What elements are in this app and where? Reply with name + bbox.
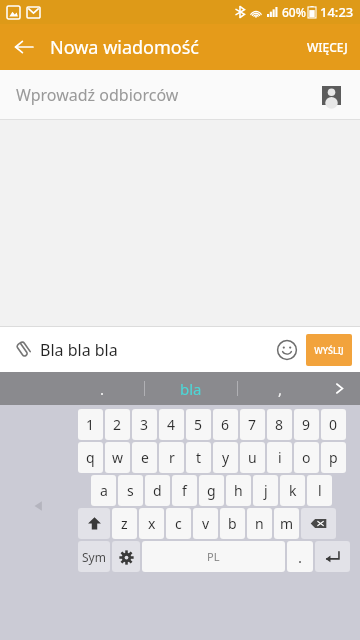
- staticText: l: [318, 481, 322, 500]
- button[interactable]: z: [112, 508, 137, 539]
- button[interactable]: q: [78, 442, 103, 473]
- button[interactable]: More suggestions: [322, 372, 356, 405]
- button[interactable]: d: [145, 475, 170, 506]
- staticText: Bla bla bla: [40, 339, 118, 361]
- staticText: h: [234, 481, 243, 500]
- button[interactable]: c: [166, 508, 191, 539]
- button[interactable]: Backspace: [301, 508, 336, 539]
- button[interactable]: 9: [294, 409, 319, 440]
- staticText: 2: [113, 415, 122, 434]
- button[interactable]: Sym: [78, 541, 110, 572]
- button[interactable]: 4: [159, 409, 184, 440]
- button[interactable]: u: [240, 442, 265, 473]
- button[interactable]: v: [193, 508, 218, 539]
- staticText: bla: [180, 379, 202, 399]
- staticText: u: [248, 448, 257, 467]
- button[interactable]: 2: [105, 409, 130, 440]
- button[interactable]: 5: [186, 409, 211, 440]
- button[interactable]: 7: [240, 409, 265, 440]
- button[interactable]: WIĘCEJ: [295, 24, 360, 70]
- staticText: p: [329, 448, 338, 467]
- staticText: 14:23: [320, 3, 354, 21]
- button[interactable]: PL: [142, 541, 285, 572]
- staticText: 5: [194, 415, 203, 434]
- button[interactable]: i: [267, 442, 292, 473]
- staticText: 1: [86, 415, 95, 434]
- button[interactable]: ,: [238, 372, 322, 405]
- button[interactable]: y: [213, 442, 238, 473]
- staticText: d: [153, 481, 162, 500]
- button[interactable]: f: [172, 475, 197, 506]
- staticText: Wprowadź odbiorców: [16, 84, 179, 106]
- button[interactable]: e: [132, 442, 157, 473]
- staticText: f: [182, 481, 187, 500]
- button[interactable]: Move keyboard: [26, 493, 52, 519]
- staticText: 60%: [282, 4, 306, 20]
- button[interactable]: k: [280, 475, 305, 506]
- staticText: z: [121, 514, 128, 533]
- button[interactable]: w: [105, 442, 130, 473]
- button[interactable]: r: [159, 442, 184, 473]
- button[interactable]: m: [274, 508, 299, 539]
- staticText: 9: [302, 415, 311, 434]
- button[interactable]: 1: [78, 409, 103, 440]
- button[interactable]: WYŚLIJ: [306, 334, 352, 366]
- staticText: g: [207, 481, 216, 500]
- button[interactable]: j: [253, 475, 278, 506]
- button[interactable]: b: [220, 508, 245, 539]
- staticText: v: [202, 514, 210, 533]
- button[interactable]: p: [321, 442, 346, 473]
- button[interactable]: Add recipient from contacts: [316, 80, 346, 110]
- staticText: q: [86, 448, 95, 467]
- staticText: 8: [275, 415, 284, 434]
- staticText: m: [280, 514, 294, 533]
- button[interactable]: t: [186, 442, 211, 473]
- staticText: .: [298, 547, 303, 567]
- button[interactable]: h: [226, 475, 251, 506]
- button[interactable]: a: [91, 475, 116, 506]
- button[interactable]: n: [247, 508, 272, 539]
- button[interactable]: .: [60, 372, 144, 405]
- staticText: 4: [167, 415, 176, 434]
- button[interactable]: 0: [321, 409, 346, 440]
- staticText: w: [112, 448, 124, 467]
- staticText: t: [196, 448, 202, 467]
- staticText: .: [100, 379, 105, 399]
- staticText: s: [127, 481, 134, 500]
- staticText: r: [169, 448, 175, 467]
- button[interactable]: l: [307, 475, 332, 506]
- button[interactable]: .: [287, 541, 313, 572]
- staticText: k: [289, 481, 297, 500]
- staticText: PL: [207, 549, 220, 564]
- button[interactable]: 6: [213, 409, 238, 440]
- staticText: e: [141, 448, 149, 467]
- staticText: Nowa wiadomość: [50, 35, 199, 60]
- staticText: 3: [140, 415, 149, 434]
- button[interactable]: Back: [6, 29, 42, 65]
- button[interactable]: 3: [132, 409, 157, 440]
- button[interactable]: Enter: [315, 541, 350, 572]
- button[interactable]: s: [118, 475, 143, 506]
- staticText: 0: [329, 415, 338, 434]
- button[interactable]: Shift: [78, 508, 110, 539]
- button[interactable]: 8: [267, 409, 292, 440]
- button[interactable]: x: [139, 508, 164, 539]
- button[interactable]: bla: [145, 372, 237, 405]
- staticText: i: [278, 448, 282, 467]
- staticText: WYŚLIJ: [314, 344, 344, 356]
- button[interactable]: g: [199, 475, 224, 506]
- staticText: o: [302, 448, 311, 467]
- button[interactable]: Keyboard settings: [112, 541, 140, 572]
- button[interactable]: Emoji: [271, 334, 303, 366]
- staticText: c: [175, 514, 182, 533]
- staticText: a: [100, 481, 108, 500]
- staticText: y: [222, 448, 230, 467]
- staticText: 7: [248, 415, 257, 434]
- staticText: b: [228, 514, 237, 533]
- button[interactable]: o: [294, 442, 319, 473]
- staticText: ,: [278, 379, 283, 399]
- staticText: WIĘCEJ: [307, 39, 348, 55]
- staticText: n: [255, 514, 264, 533]
- button[interactable]: Attach: [5, 333, 39, 367]
- staticText: Sym: [82, 549, 106, 565]
